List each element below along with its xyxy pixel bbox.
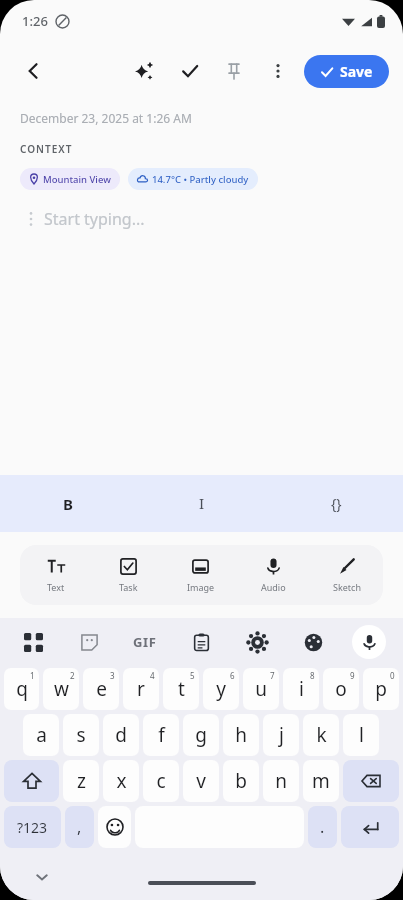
staticText: . — [320, 816, 325, 838]
button[interactable]: Sketch — [310, 545, 383, 605]
button[interactable]: Pin — [214, 51, 254, 91]
button[interactable]: y — [203, 668, 239, 710]
staticText: {} — [331, 494, 342, 513]
button[interactable]: p — [363, 668, 399, 710]
staticText: w — [54, 676, 69, 702]
staticText: 1:26 — [22, 12, 48, 30]
button[interactable]: b — [223, 760, 259, 802]
staticText: 7 — [270, 670, 275, 681]
button[interactable]: Checklist — [170, 51, 210, 91]
button[interactable]: Text — [20, 545, 92, 605]
button[interactable]: Shift — [4, 760, 59, 802]
staticText: 3 — [110, 670, 115, 681]
staticText: Text — [47, 581, 65, 593]
button[interactable]: q — [4, 668, 39, 710]
button[interactable]: Voice input — [341, 618, 397, 666]
staticText: Mountain View — [43, 173, 111, 186]
button[interactable]: ?123 — [4, 806, 61, 848]
button[interactable]: Backspace — [343, 760, 399, 802]
button[interactable]: More options — [258, 51, 298, 91]
button[interactable]: n — [263, 760, 299, 802]
button[interactable]: d — [103, 714, 139, 756]
button[interactable]: Mountain View — [20, 168, 120, 190]
button[interactable]: u — [243, 668, 279, 710]
staticText: u — [255, 676, 267, 702]
staticText: December 23, 2025 at 1:26 AM — [20, 110, 192, 126]
button[interactable]: AI assist — [124, 51, 164, 91]
button[interactable]: k — [303, 714, 339, 756]
staticText: 5 — [190, 670, 195, 681]
staticText: v — [196, 768, 206, 794]
button[interactable]: Apps — [6, 618, 61, 666]
button[interactable]: Task — [92, 545, 164, 605]
staticText: Audio — [261, 581, 286, 593]
button[interactable]: r — [123, 668, 159, 710]
button[interactable]: s — [63, 714, 99, 756]
button[interactable]: j — [263, 714, 299, 756]
button[interactable]: Themes — [285, 618, 341, 666]
button[interactable]: Emoji — [98, 806, 131, 848]
button[interactable]: Settings — [229, 618, 285, 666]
button[interactable]: c — [143, 760, 179, 802]
staticText: ?123 — [17, 818, 48, 837]
button[interactable]: Save — [304, 55, 389, 88]
staticText: c — [156, 768, 166, 794]
staticText: i — [299, 676, 304, 702]
staticText: 1 — [30, 670, 35, 681]
button[interactable]: e — [83, 668, 119, 710]
button[interactable]: l — [343, 714, 379, 756]
button[interactable]: Clipboard — [173, 618, 229, 666]
staticText: d — [115, 722, 127, 748]
staticText: 9 — [350, 670, 355, 681]
button[interactable]: Image — [164, 545, 237, 605]
button[interactable]: Audio — [237, 545, 310, 605]
staticText: p — [375, 676, 387, 702]
button[interactable]: v — [183, 760, 219, 802]
staticText: 6 — [230, 670, 235, 681]
staticText: GIF — [133, 633, 157, 651]
staticText: h — [235, 722, 247, 748]
button[interactable]: z — [63, 760, 99, 802]
button[interactable]: m — [303, 760, 339, 802]
button[interactable]: Back — [14, 51, 54, 91]
button[interactable]: w — [43, 668, 79, 710]
staticText: f — [158, 722, 165, 748]
staticText: a — [36, 722, 47, 748]
button[interactable]: Hide keyboard — [28, 863, 56, 891]
staticText: o — [335, 676, 347, 702]
button[interactable]: f — [143, 714, 179, 756]
staticText: , — [77, 816, 82, 838]
staticText: g — [195, 722, 207, 748]
button[interactable]: o — [323, 668, 359, 710]
button[interactable]: Enter — [341, 806, 399, 848]
button[interactable]: B — [0, 475, 135, 532]
staticText: Image — [187, 581, 215, 593]
button[interactable]: g — [183, 714, 219, 756]
button[interactable]: , — [65, 806, 94, 848]
button[interactable]: t — [163, 668, 199, 710]
staticText: 4 — [150, 670, 155, 681]
button[interactable]: Stickers — [61, 618, 117, 666]
button[interactable]: i — [283, 668, 319, 710]
staticText: Save — [340, 62, 373, 81]
staticText: 14.7°C • Partly cloudy — [152, 173, 249, 186]
staticText: Task — [119, 581, 138, 593]
button[interactable]: h — [223, 714, 259, 756]
staticText: m — [312, 768, 330, 794]
staticText: CONTEXT — [20, 142, 73, 156]
button[interactable]: x — [103, 760, 139, 802]
staticText: 2 — [70, 670, 75, 681]
staticText: y — [216, 676, 226, 702]
staticText: I — [199, 494, 205, 513]
button[interactable]: I — [135, 475, 269, 532]
staticText: B — [63, 494, 73, 514]
button[interactable]: {} — [269, 475, 403, 532]
button[interactable]: . — [308, 806, 337, 848]
staticText: s — [76, 722, 86, 748]
staticText: Sketch — [333, 581, 361, 593]
staticText: n — [275, 768, 287, 794]
button[interactable]: 14.7°C • Partly cloudy — [128, 168, 258, 190]
button[interactable]: GIF — [117, 618, 173, 666]
button[interactable]: a — [23, 714, 59, 756]
